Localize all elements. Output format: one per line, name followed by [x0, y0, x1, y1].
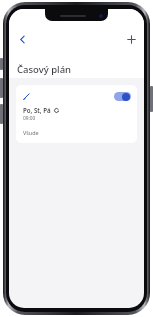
- staticText: Všude: [23, 129, 39, 136]
- button[interactable]: Edit: [16, 85, 137, 143]
- button[interactable]: Back: [14, 31, 30, 47]
- staticText: Po, St, Pá: [23, 106, 51, 114]
- staticText: 09:00: [23, 115, 36, 122]
- button[interactable]: Schedule enabled: [114, 92, 131, 101]
- button[interactable]: Add schedule: [123, 31, 139, 47]
- button[interactable]: Edit: [23, 91, 34, 102]
- staticText: Časový plán: [17, 63, 72, 76]
